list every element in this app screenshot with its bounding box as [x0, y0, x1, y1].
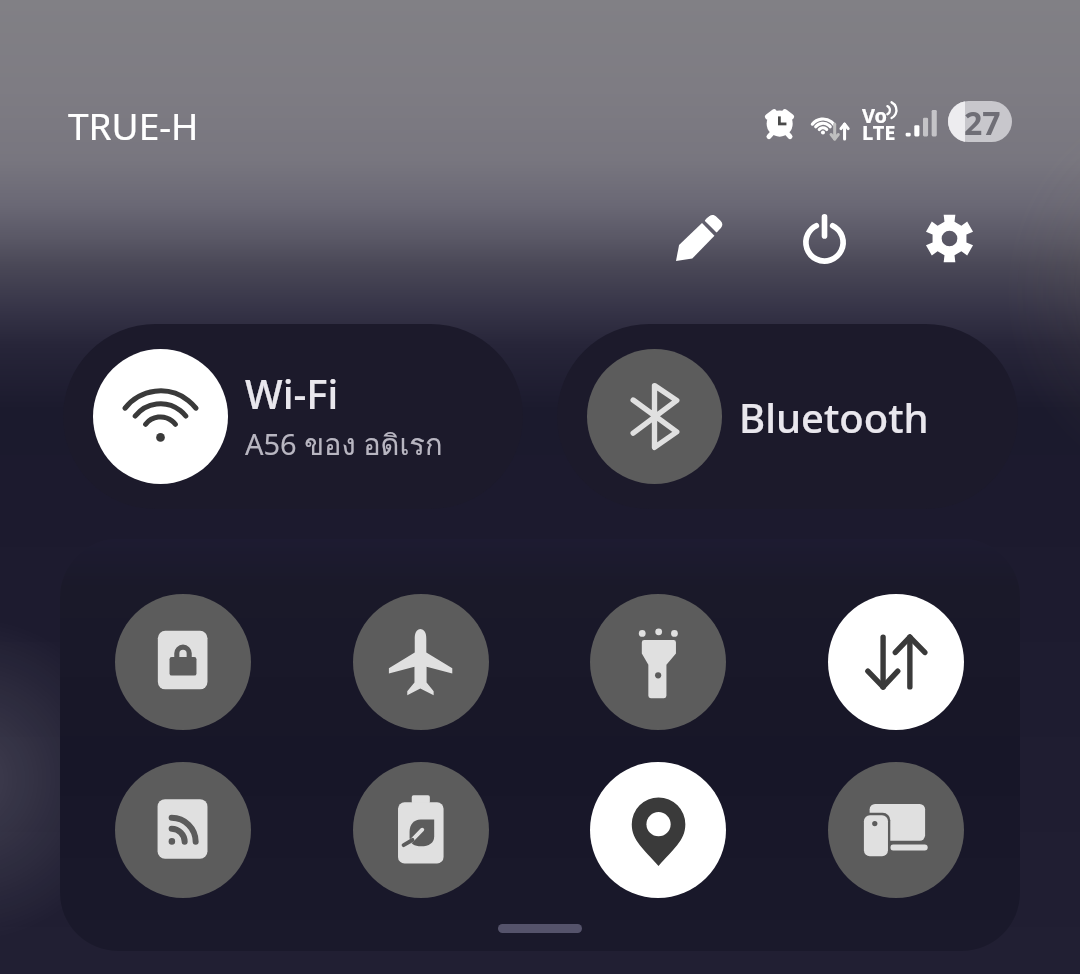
button[interactable]: Battery saver: [353, 762, 489, 898]
staticText: LTE: [862, 119, 896, 146]
button[interactable]: Mobile data: [828, 594, 964, 730]
staticText: TRUE-H: [68, 100, 199, 150]
button[interactable]: Edit: [651, 190, 747, 286]
button[interactable]: Smart View: [828, 762, 964, 898]
staticText: A56 ของ อดิเรก: [245, 422, 443, 468]
button[interactable]: Power: [776, 190, 872, 286]
button[interactable]: Airplane mode: [353, 594, 489, 730]
staticText: 27: [964, 101, 1001, 142]
button[interactable]: Location: [590, 762, 726, 898]
button[interactable]: Bluetooth: [557, 324, 1018, 509]
staticText: Bluetooth: [739, 390, 929, 444]
button[interactable]: Settings: [901, 190, 997, 286]
button[interactable]: NFC: [115, 762, 251, 898]
button[interactable]: Wi-Fi: [63, 324, 523, 509]
button[interactable]: Auto rotate: [115, 594, 251, 730]
button[interactable]: Flashlight: [590, 594, 726, 730]
staticText: Vo: [862, 102, 888, 129]
staticText: Wi-Fi: [245, 366, 339, 420]
